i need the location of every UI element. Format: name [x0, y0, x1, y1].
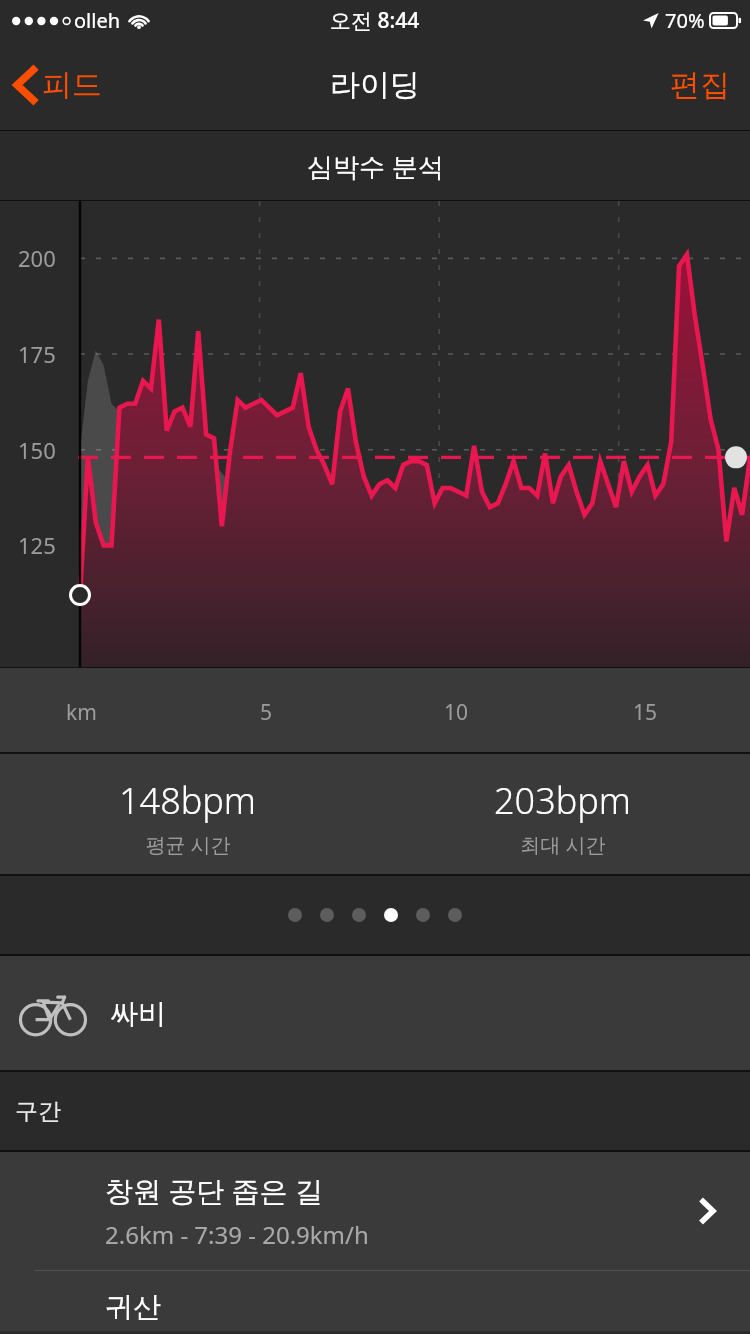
- staticText: 최대 시간: [520, 831, 606, 858]
- staticText: 2.6km - 7:39 - 20.9km/h: [105, 1218, 369, 1251]
- staticText: 피드: [42, 66, 102, 104]
- staticText: 70%: [665, 7, 705, 34]
- button[interactable]: 귀산: [0, 1271, 750, 1331]
- staticText: 평균 시간: [145, 831, 231, 858]
- staticText: 5: [260, 698, 273, 727]
- staticText: 창원 공단 좁은 길: [105, 1171, 323, 1209]
- button[interactable]: 피드: [10, 58, 106, 112]
- staticText: 싸비: [110, 996, 166, 1031]
- button[interactable]: 148bpm: [0, 754, 375, 874]
- staticText: 125: [18, 530, 56, 560]
- staticText: olleh: [74, 7, 121, 34]
- button[interactable]: 창원 공단 좁은 길: [0, 1152, 750, 1270]
- staticText: km: [66, 698, 97, 727]
- staticText: 148bpm: [119, 776, 256, 825]
- staticText: 구간: [15, 1097, 61, 1126]
- staticText: 라이딩: [330, 66, 420, 104]
- staticText: 귀산: [105, 1289, 161, 1324]
- staticText: 심박수 분석: [307, 148, 444, 184]
- staticText: 편집: [670, 66, 730, 104]
- staticText: 15: [633, 698, 658, 727]
- staticText: 오전 8:44: [330, 6, 420, 35]
- button[interactable]: Bike: [0, 956, 750, 1070]
- staticText: 150: [18, 435, 56, 465]
- button[interactable]: 203bpm: [375, 754, 750, 874]
- staticText: 10: [444, 698, 469, 727]
- staticText: 200: [18, 243, 56, 273]
- other: Open segment: [692, 1189, 722, 1233]
- staticText: 203bpm: [494, 776, 631, 825]
- other: Bike: [24, 992, 82, 1034]
- button[interactable]: 편집: [650, 56, 750, 114]
- staticText: 175: [18, 339, 56, 369]
